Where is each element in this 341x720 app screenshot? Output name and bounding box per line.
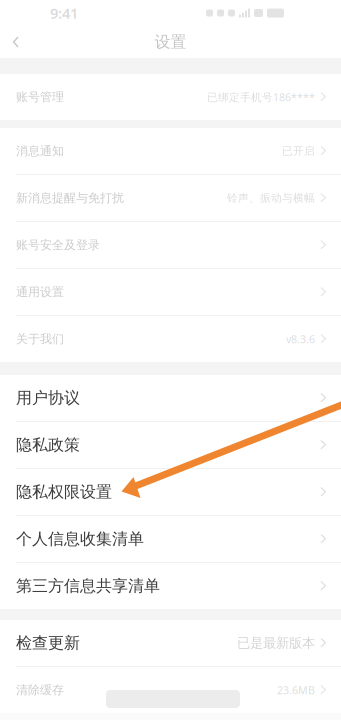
staticText: 用户协议	[16, 388, 80, 408]
staticText: 新消息提醒与免打扰	[16, 191, 124, 205]
button[interactable]: 消息通知	[0, 128, 341, 174]
staticText: 消息通知	[16, 144, 64, 158]
staticText: v8.3.6	[286, 332, 315, 346]
staticText: 已是最新版本	[237, 635, 315, 651]
staticText: 隐私政策	[16, 435, 80, 455]
staticText: 设置	[154, 32, 186, 52]
staticText: 已绑定手机号186****	[207, 90, 315, 104]
button[interactable]: 第三方信息共享清单	[0, 563, 341, 609]
button[interactable]: 检查更新	[0, 620, 341, 666]
staticText: 清除缓存	[16, 683, 64, 697]
button[interactable]: 账号管理	[0, 74, 341, 120]
staticText: 23.6MB	[277, 683, 315, 697]
staticText: 9:41	[50, 3, 78, 23]
staticText: 账号安全及登录	[16, 238, 100, 252]
staticText: 关于我们	[16, 332, 64, 346]
staticText: 第三方信息共享清单	[16, 576, 160, 596]
staticText: 账号管理	[16, 90, 64, 104]
button[interactable]: 账号安全及登录	[0, 222, 341, 268]
button[interactable]: Back	[0, 26, 34, 58]
button[interactable]: 新消息提醒与免打扰	[0, 175, 341, 221]
staticText: 通用设置	[16, 285, 64, 299]
staticText: 隐私权限设置	[16, 482, 112, 502]
button[interactable]: 个人信息收集清单	[0, 516, 341, 562]
button[interactable]: 隐私政策	[0, 422, 341, 468]
button[interactable]: 关于我们	[0, 316, 341, 362]
staticText: 个人信息收集清单	[16, 529, 144, 549]
button[interactable]: 通用设置	[0, 269, 341, 315]
staticText: 已开启	[282, 144, 315, 157]
button[interactable]: 隐私权限设置	[0, 469, 341, 515]
button[interactable]: 清除缓存	[0, 667, 341, 713]
staticText: 检查更新	[16, 633, 80, 653]
staticText: 铃声、振动与横幅	[227, 191, 315, 204]
button[interactable]: 用户协议	[0, 375, 341, 421]
